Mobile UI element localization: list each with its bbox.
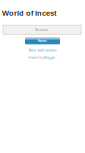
staticText: View web version	[28, 48, 56, 52]
staticText: Powered by	[28, 56, 43, 59]
button[interactable]: Home	[25, 37, 60, 44]
staticText: Blogger	[44, 56, 55, 59]
staticText: World of Incest	[2, 9, 56, 17]
button[interactable]: View web version	[28, 48, 56, 52]
staticText: No posts.	[35, 28, 49, 32]
staticText: .	[56, 56, 57, 59]
button[interactable]: Blogger	[44, 56, 55, 59]
staticText: Home	[38, 39, 47, 43]
